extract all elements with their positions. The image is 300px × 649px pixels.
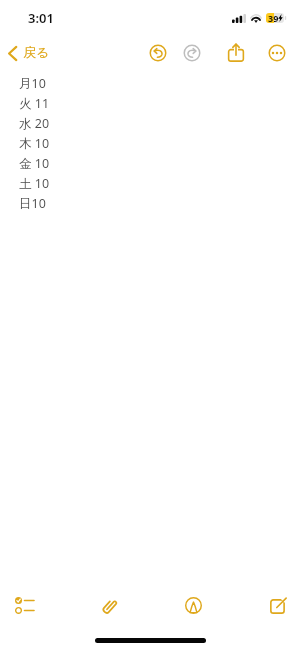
staticText: 金 10	[19, 155, 50, 172]
button[interactable]: Undo	[143, 38, 173, 68]
staticText: 39	[268, 12, 279, 24]
button[interactable]: Checklist	[2, 583, 46, 627]
button[interactable]: Attach file	[87, 584, 131, 628]
staticText: 水 20	[19, 115, 50, 132]
staticText: 戻る	[23, 44, 50, 60]
button[interactable]: New note	[256, 583, 300, 627]
button[interactable]: More	[262, 38, 292, 68]
staticText: 火 11	[19, 95, 50, 112]
button[interactable]: Share	[221, 38, 251, 68]
staticText: 月10	[19, 75, 46, 92]
staticText: 木 10	[19, 135, 50, 152]
button[interactable]: 戻る	[4, 38, 56, 68]
button[interactable]: Redo	[177, 38, 207, 68]
button[interactable]: Markup	[171, 583, 215, 627]
staticText: 3:01	[28, 9, 54, 27]
staticText: 日10	[19, 195, 46, 212]
staticText: 土 10	[19, 175, 50, 192]
